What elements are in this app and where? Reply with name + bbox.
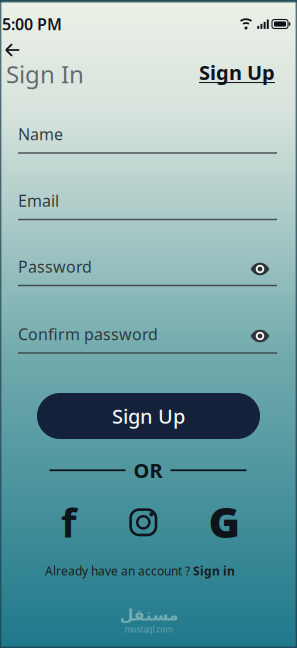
button[interactable]: Back xyxy=(1,39,24,60)
button[interactable]: Sign up with Facebook xyxy=(61,495,76,549)
button[interactable]: Already have an account ? Sign in xyxy=(45,563,235,579)
staticText: Sign Up xyxy=(199,59,275,86)
button[interactable]: Sign Up xyxy=(37,393,260,439)
staticText: Sign In xyxy=(6,58,84,90)
staticText: Email xyxy=(18,190,59,211)
button[interactable]: Show confirm password xyxy=(247,325,272,346)
button[interactable]: Show password xyxy=(247,258,272,279)
staticText: مستقل xyxy=(119,606,178,624)
staticText: Sign Up xyxy=(112,403,185,429)
staticText: Confirm password xyxy=(18,323,158,345)
staticText: G xyxy=(208,493,240,550)
staticText: mostaql.com xyxy=(124,624,172,635)
staticText: 5:00 PM xyxy=(2,13,62,35)
button[interactable]: Sign up with Instagram xyxy=(129,508,157,536)
staticText: Name xyxy=(18,123,63,145)
staticText: Already have an account ? Sign in xyxy=(45,563,235,579)
button[interactable]: Sign up with Google xyxy=(208,493,240,550)
staticText: Password xyxy=(18,256,92,277)
button[interactable]: Sign Up xyxy=(199,59,275,86)
staticText: OR xyxy=(133,457,162,484)
staticText: f xyxy=(61,495,76,549)
